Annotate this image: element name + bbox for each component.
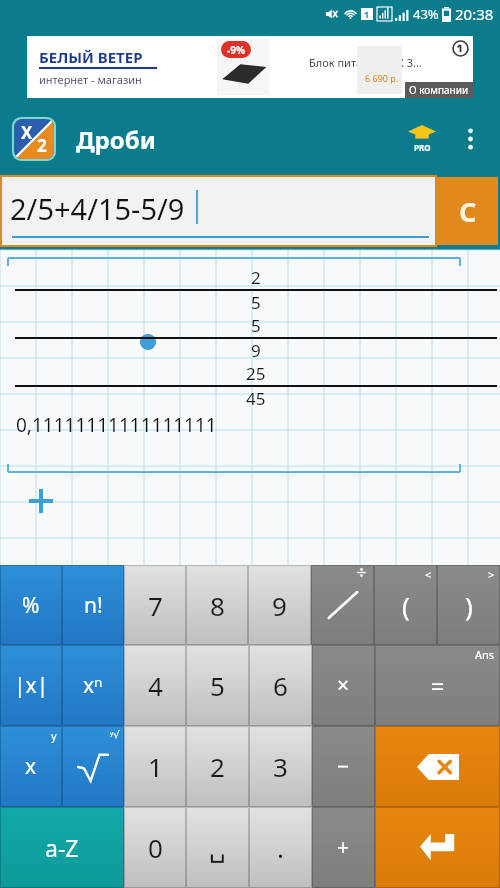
staticText: 0,11111111111111111 <box>16 412 217 438</box>
staticText: PRO <box>414 142 431 153</box>
button[interactable]: Square root <box>62 726 124 807</box>
staticText: 20:38 <box>455 4 494 24</box>
staticText: -9% <box>227 43 245 57</box>
button[interactable]: Enter <box>375 807 500 888</box>
staticText: x <box>25 752 37 781</box>
button[interactable]: X <box>14 119 54 159</box>
staticText: 6 <box>273 668 288 703</box>
button[interactable]: 5 <box>186 645 249 726</box>
staticText: < <box>425 567 432 582</box>
staticText: 9 <box>251 339 261 362</box>
button[interactable]: = <box>375 645 500 726</box>
staticText: 5 <box>210 668 225 703</box>
button[interactable]: 2 <box>186 726 249 807</box>
button[interactable]: x <box>0 726 62 807</box>
staticText: |x| <box>14 671 49 700</box>
button[interactable]: . <box>249 807 312 888</box>
staticText: 1 <box>148 749 163 784</box>
button[interactable]: |x| <box>0 645 62 726</box>
staticText: Блок питания ATX 3… <box>309 55 422 70</box>
button[interactable]: 8 <box>186 565 248 645</box>
staticText: 8 <box>210 588 225 623</box>
staticText: 1 <box>364 8 370 20</box>
staticText: 6 690 р. <box>365 72 399 84</box>
staticText: n! <box>84 591 103 620</box>
staticText: 3 <box>273 749 288 784</box>
button[interactable]: Backspace <box>375 726 500 807</box>
other: Enter <box>420 834 456 862</box>
staticText: xⁿ <box>83 671 103 700</box>
staticText: 5 <box>251 291 261 314</box>
button[interactable]: n! <box>62 565 124 645</box>
staticText: 2/5+4/15-5/9 <box>10 189 185 228</box>
staticText: − <box>337 752 350 781</box>
staticText: БЕЛЫЙ ВЕТЕР <box>39 47 143 67</box>
staticText: X <box>21 121 33 144</box>
staticText: 45 <box>246 387 266 410</box>
button[interactable]: 0 <box>124 807 186 888</box>
staticText: 43% <box>413 5 439 23</box>
button[interactable]: Divide <box>311 565 374 645</box>
button[interactable]: 2/5+4/15-5/9 <box>2 177 435 245</box>
staticText: Ans <box>475 647 495 662</box>
button[interactable]: 4 <box>124 645 186 726</box>
button[interactable]: Add <box>22 482 60 520</box>
button[interactable]: 9 <box>248 565 311 645</box>
button[interactable]: 3 <box>249 726 312 807</box>
staticText: + <box>337 833 350 862</box>
staticText: > <box>488 567 495 582</box>
staticText: = <box>431 670 445 701</box>
staticText: a-Z <box>45 832 79 863</box>
staticText: ␣ <box>209 833 226 863</box>
staticText: 4 <box>148 668 163 703</box>
button[interactable]: ␣ <box>186 807 249 888</box>
button[interactable]: БЕЛЫЙ ВЕТЕР <box>27 36 473 98</box>
staticText: 7 <box>148 588 163 623</box>
button[interactable]: C <box>437 177 498 245</box>
button[interactable]: 1 <box>124 726 186 807</box>
staticText: Дроби <box>76 123 156 156</box>
staticText: . <box>277 830 284 865</box>
button[interactable]: ( <box>374 565 437 645</box>
staticText: 2 <box>37 134 47 157</box>
staticText: % <box>22 591 40 620</box>
button[interactable]: + <box>312 807 375 888</box>
staticText: ʸ√ <box>110 727 120 741</box>
staticText: × <box>337 671 350 700</box>
staticText: О компании <box>409 83 469 97</box>
staticText: 25 <box>246 362 266 385</box>
button[interactable]: a-Z <box>0 807 124 888</box>
button[interactable]: 6 <box>249 645 312 726</box>
button[interactable]: × <box>312 645 375 726</box>
staticText: ( <box>402 588 410 623</box>
staticText: 9 <box>272 588 287 623</box>
staticText: интернет - магазин <box>39 72 142 87</box>
button[interactable]: ) <box>437 565 500 645</box>
staticText: 2 <box>251 266 261 289</box>
staticText: 0 <box>148 830 163 865</box>
button[interactable]: − <box>312 726 375 807</box>
button[interactable]: % <box>0 565 62 645</box>
staticText: 5 <box>251 314 261 337</box>
staticText: 2 <box>210 749 225 784</box>
staticText: C <box>459 193 477 230</box>
button[interactable]: xⁿ <box>62 645 124 726</box>
button[interactable]: PRO <box>402 119 442 159</box>
other: Backspace <box>417 754 459 780</box>
staticText: y <box>51 728 57 743</box>
staticText: ) <box>465 588 473 623</box>
button[interactable]: More options <box>452 121 488 157</box>
button[interactable]: 7 <box>124 565 186 645</box>
